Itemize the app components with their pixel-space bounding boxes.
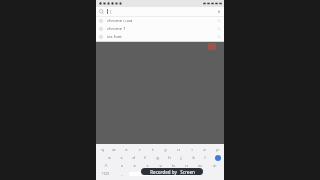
staticText: u <box>177 147 180 153</box>
button[interactable]: s <box>115 154 127 162</box>
button[interactable]: . <box>191 170 204 178</box>
staticText: t <box>152 147 154 153</box>
staticText: y <box>164 147 167 153</box>
staticText: , <box>121 171 123 177</box>
button[interactable]: d <box>127 154 139 162</box>
staticText: e <box>125 147 128 153</box>
button[interactable]: Shift <box>96 162 115 170</box>
button[interactable]: Voice search <box>217 10 221 14</box>
button[interactable]: u <box>172 146 185 154</box>
button[interactable]: ios font <box>96 33 224 41</box>
staticText: s <box>120 155 123 161</box>
staticText: v <box>159 163 162 169</box>
button[interactable]: j <box>175 154 187 162</box>
other: Insert suggestion <box>217 27 221 31</box>
button[interactable]: Search <box>96 7 224 16</box>
button[interactable]: p <box>211 146 224 154</box>
staticText: j <box>180 155 182 161</box>
button[interactable]: chrome i usa <box>96 17 224 25</box>
staticText: c <box>146 163 149 169</box>
button[interactable]: o <box>198 146 211 154</box>
staticText: g <box>156 155 159 161</box>
button[interactable]: n <box>180 162 193 170</box>
button[interactable]: r <box>133 146 146 154</box>
button[interactable]: w <box>108 146 120 154</box>
button[interactable]: e <box>120 146 133 154</box>
button[interactable]: f <box>139 154 151 162</box>
staticText: chrome i usa <box>107 18 133 24</box>
staticText: I <box>110 9 112 15</box>
button[interactable]: q <box>96 146 108 154</box>
button[interactable]: t <box>146 146 159 154</box>
other: Insert suggestion <box>217 19 221 23</box>
staticText: p <box>216 147 219 153</box>
staticText: b <box>172 163 175 169</box>
button[interactable]: b <box>167 162 180 170</box>
button[interactable]: x <box>128 162 141 170</box>
button[interactable]: ?123 <box>96 170 115 178</box>
staticText: x <box>133 163 136 169</box>
button[interactable]: h <box>163 154 175 162</box>
other: Search <box>99 9 104 14</box>
staticText: i <box>191 147 193 153</box>
button[interactable]: i <box>185 146 198 154</box>
staticText: Recorded by Screen <box>150 169 195 175</box>
button[interactable]: v <box>154 162 167 170</box>
staticText: n <box>185 163 188 169</box>
staticText: h <box>168 155 171 161</box>
staticText: z <box>121 163 123 169</box>
button[interactable]: Backspace <box>206 162 224 170</box>
staticText: chrome 1 <box>107 26 126 32</box>
button[interactable]: a <box>103 154 115 162</box>
button[interactable]: Space <box>129 172 190 176</box>
button[interactable]: k <box>187 154 199 162</box>
other: Insert suggestion <box>217 35 221 39</box>
staticText: d <box>132 155 135 161</box>
staticText: w <box>112 147 116 153</box>
staticText: l <box>204 155 206 161</box>
staticText: m <box>198 163 202 169</box>
staticText: ?123 <box>102 172 109 176</box>
button[interactable]: chrome 1 <box>96 25 224 33</box>
button[interactable]: z <box>115 162 128 170</box>
staticText: o <box>203 147 206 153</box>
button[interactable]: y <box>159 146 172 154</box>
staticText: . <box>197 171 199 177</box>
staticText: k <box>192 155 195 161</box>
staticText: r <box>139 147 141 153</box>
staticText: ios font <box>107 34 122 40</box>
staticText: f <box>144 155 146 161</box>
button[interactable]: g <box>151 154 163 162</box>
button[interactable]: c <box>141 162 154 170</box>
button[interactable]: Search <box>215 155 221 161</box>
button[interactable]: l <box>199 154 211 162</box>
staticText: a <box>108 155 111 161</box>
button[interactable]: m <box>193 162 206 170</box>
staticText: q <box>101 147 104 153</box>
